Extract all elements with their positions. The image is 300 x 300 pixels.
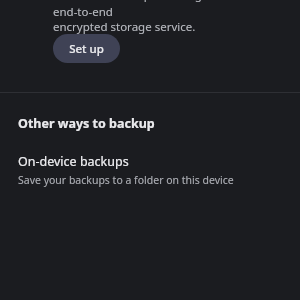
- staticText: Automatic backups with Signal's secure e…: [53, 0, 282, 19]
- staticText: On-device backups: [18, 153, 129, 170]
- staticText: Save your backups to a folder on this de…: [18, 173, 234, 187]
- staticText: encrypted storage service.: [53, 19, 196, 35]
- staticText: Set up: [69, 41, 104, 57]
- button[interactable]: Set up: [53, 34, 120, 63]
- staticText: Other ways to backup: [18, 115, 155, 132]
- button[interactable]: On-device backups: [0, 150, 300, 195]
